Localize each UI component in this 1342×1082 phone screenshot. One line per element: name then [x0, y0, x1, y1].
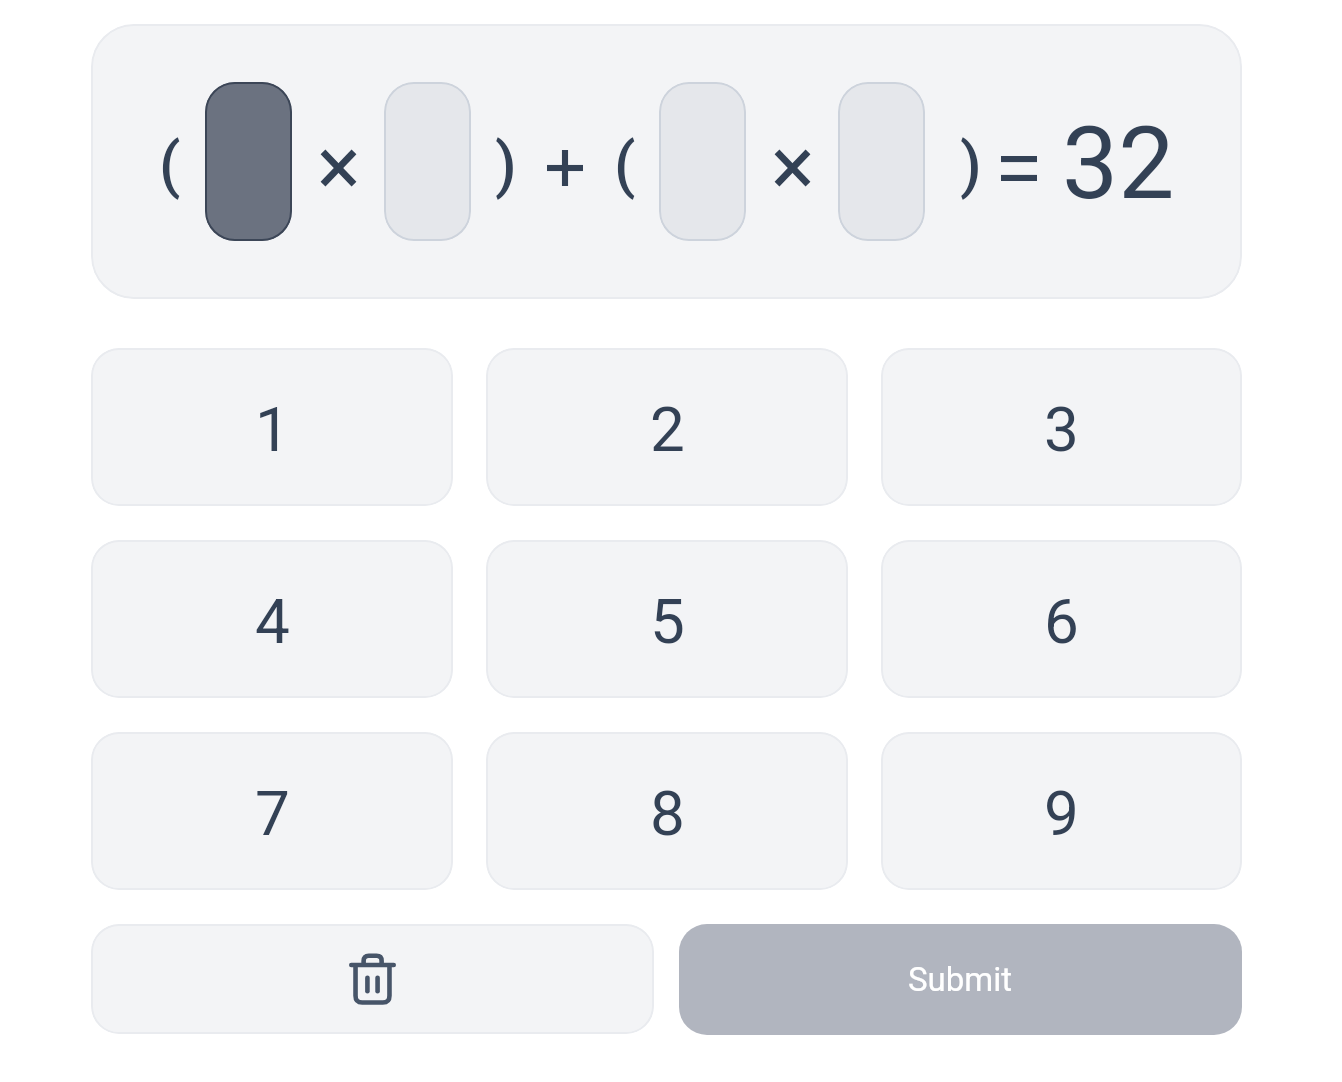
button[interactable]: Delete: [91, 924, 654, 1034]
button[interactable]: 1: [91, 348, 453, 506]
staticText: 7: [255, 777, 290, 850]
button[interactable]: 2: [486, 348, 848, 506]
staticText: 1: [255, 393, 290, 466]
staticText: 4: [255, 585, 290, 658]
staticText: (: [614, 128, 636, 201]
button[interactable]: Answer slot 3: [659, 82, 746, 241]
staticText: 3: [1044, 393, 1079, 466]
staticText: 8: [650, 777, 685, 850]
staticText: ): [495, 128, 517, 201]
staticText: (: [159, 128, 181, 201]
button[interactable]: 4: [91, 540, 453, 698]
staticText: 6: [1044, 585, 1079, 658]
button[interactable]: 5: [486, 540, 848, 698]
button[interactable]: 8: [486, 732, 848, 890]
staticText: 32: [1062, 105, 1175, 222]
button[interactable]: Answer slot 4: [838, 82, 925, 241]
button[interactable]: Answer slot 2: [384, 82, 471, 241]
staticText: Submit: [908, 960, 1013, 999]
button[interactable]: Submit: [679, 924, 1242, 1035]
staticText: 5: [650, 585, 685, 658]
staticText: 2: [650, 393, 685, 466]
button[interactable]: Answer slot 1: [205, 82, 292, 241]
button[interactable]: 7: [91, 732, 453, 890]
button[interactable]: 3: [881, 348, 1242, 506]
button[interactable]: 9: [881, 732, 1242, 890]
staticText: 9: [1044, 777, 1079, 850]
button[interactable]: 6: [881, 540, 1242, 698]
staticText: ): [960, 128, 982, 201]
